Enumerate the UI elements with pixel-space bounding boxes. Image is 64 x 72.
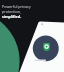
staticText: protection, [2, 9, 21, 14]
staticText: simplified. [2, 14, 22, 19]
staticText: Powerful privacy [2, 4, 31, 9]
